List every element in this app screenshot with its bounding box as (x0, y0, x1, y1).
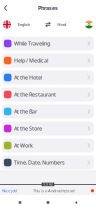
staticText: Phrases (38, 4, 58, 12)
button[interactable]: Help / Medical (2, 53, 94, 67)
button[interactable]: Time, Date, Numbers (2, 155, 94, 169)
button[interactable]: At the Bar (2, 104, 94, 118)
button[interactable]: At the Store (2, 121, 94, 135)
button[interactable]: While Traveling (2, 36, 94, 50)
button[interactable]: Back (0, 0, 11, 16)
button[interactable]: Hindi (53, 20, 93, 28)
staticText: At the Bar (14, 108, 37, 115)
staticText: Time, Date, Numbers (14, 159, 65, 166)
button[interactable]: At the Hotel (2, 70, 94, 84)
button[interactable]: Home (40, 195, 56, 210)
button[interactable]: At the Restaurant (2, 87, 94, 101)
staticText: This is a Android test ad. (33, 188, 75, 193)
button[interactable]: Back (68, 195, 84, 210)
button[interactable]: Swap languages (42, 19, 53, 30)
button[interactable]: Recent apps (12, 195, 28, 210)
staticText: English (18, 22, 30, 27)
staticText: At the Store (14, 125, 42, 132)
staticText: Hindi (57, 22, 66, 27)
button[interactable]: English (3, 20, 42, 28)
staticText: At Work (14, 142, 33, 149)
staticText: Help / Medical (14, 57, 48, 64)
staticText: Nice job! (2, 188, 17, 193)
staticText: Test Ad (43, 183, 53, 186)
staticText: At the Restaurant (14, 91, 56, 98)
staticText: At the Hotel (14, 74, 42, 81)
staticText: While Traveling (14, 40, 50, 47)
button[interactable]: At Work (2, 138, 94, 152)
